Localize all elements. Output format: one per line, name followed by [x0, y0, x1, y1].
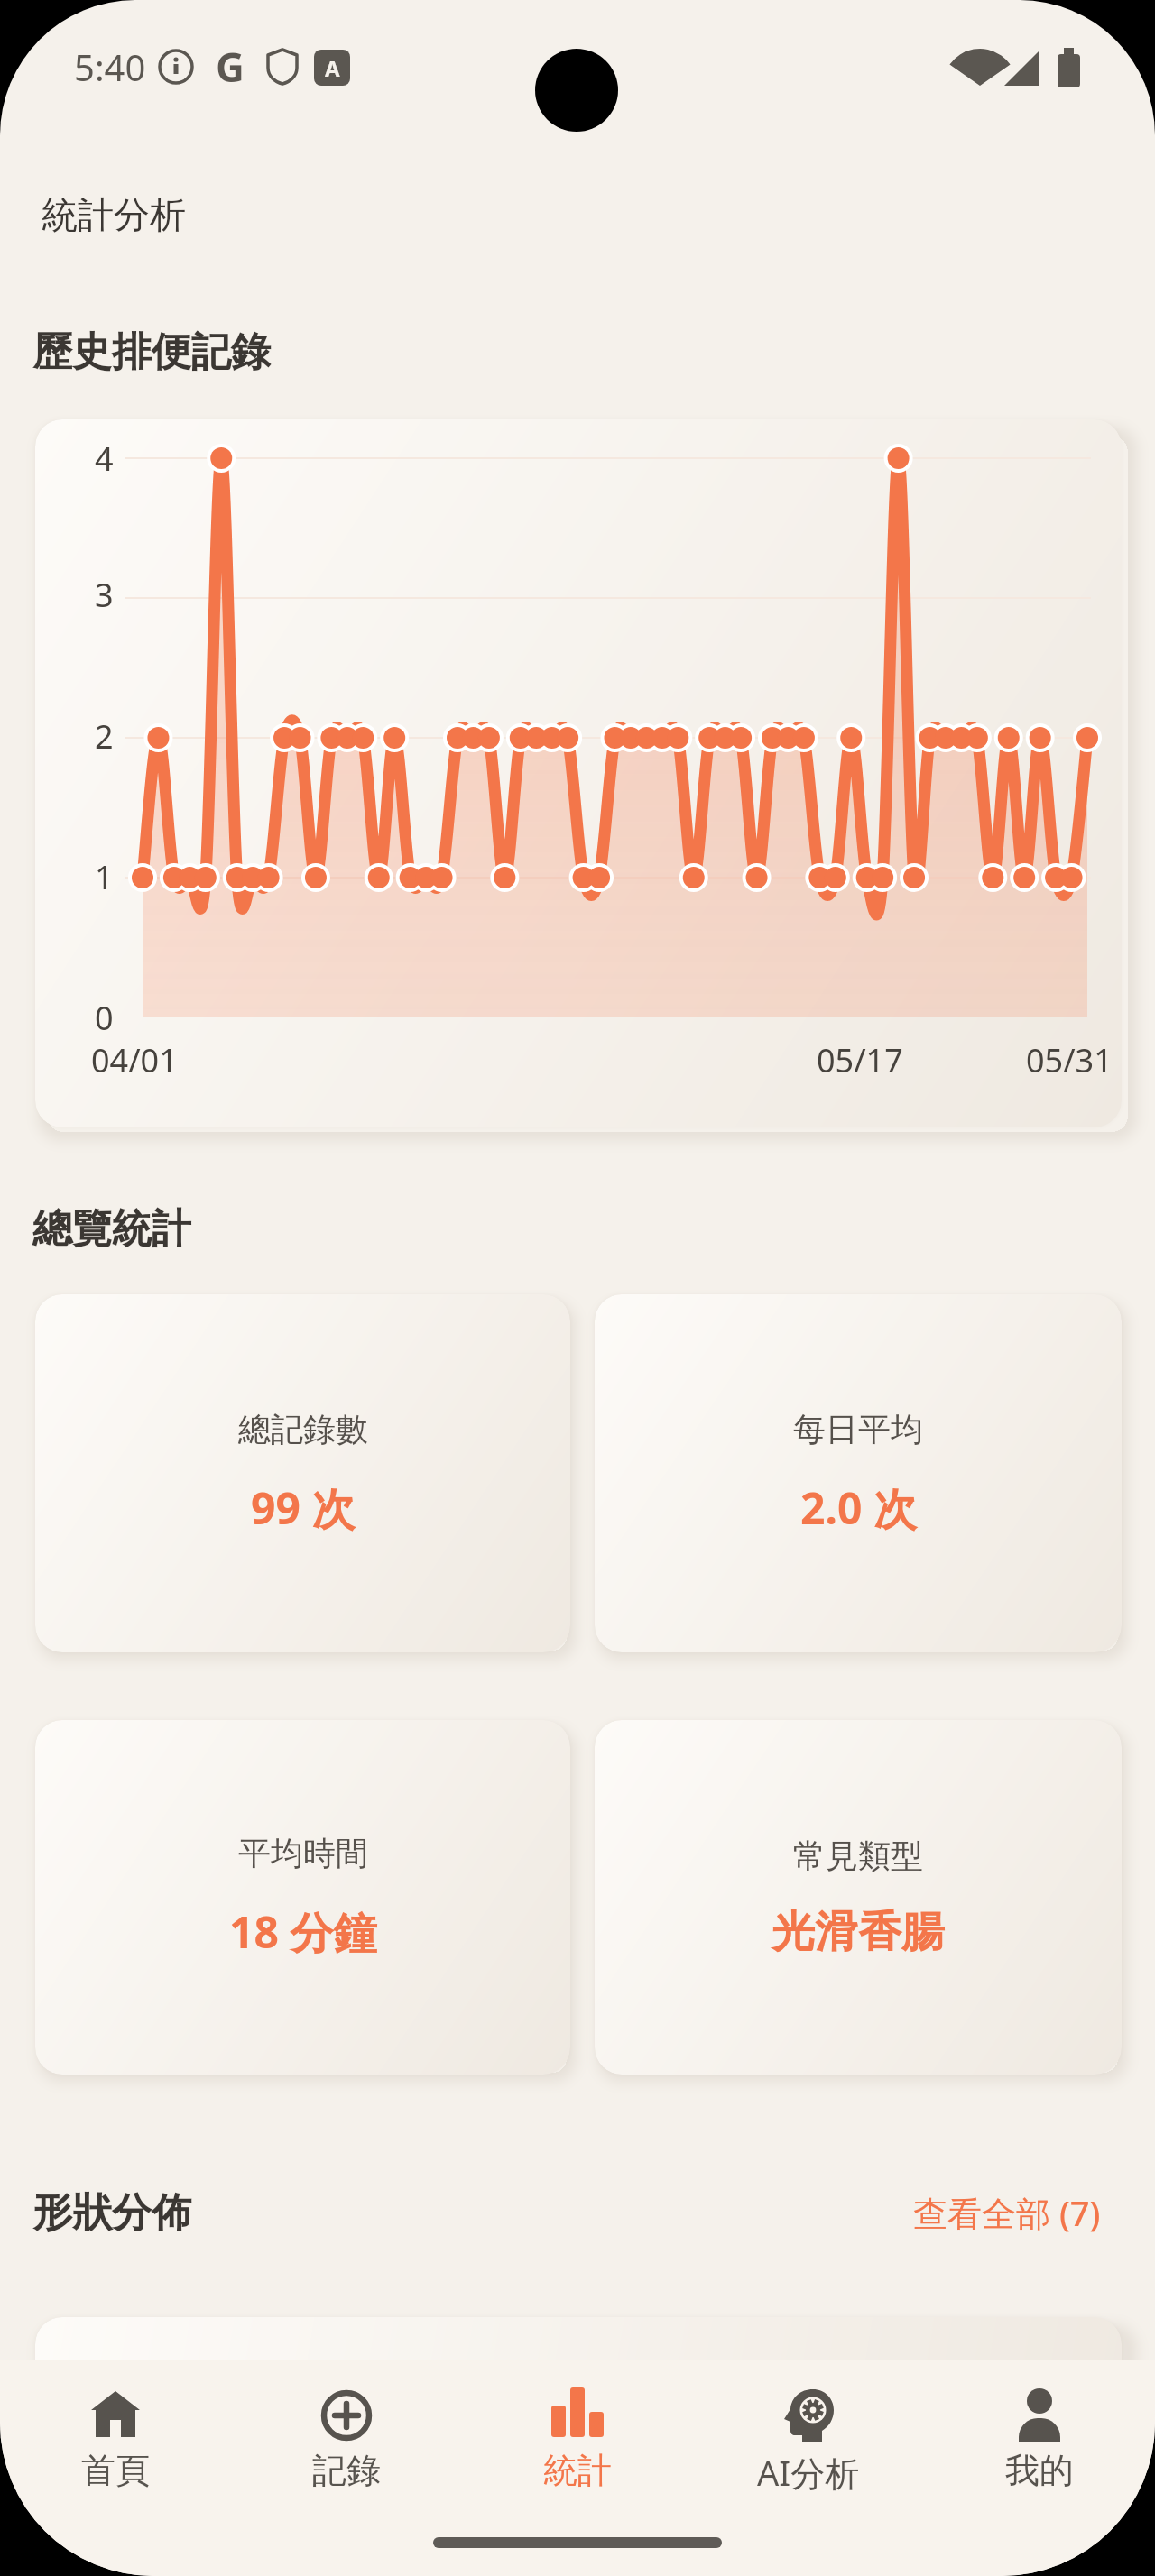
- button[interactable]: 常見類型: [595, 1720, 1122, 2075]
- button[interactable]: 記錄: [231, 2360, 462, 2513]
- staticText: 3: [95, 573, 114, 617]
- staticText: 0: [95, 996, 114, 1040]
- staticText: 平均時間: [238, 1833, 368, 1873]
- button[interactable]: 首頁: [0, 2360, 231, 2513]
- button[interactable]: 每日平均: [595, 1294, 1122, 1652]
- staticText: 統計分析: [42, 192, 186, 237]
- button[interactable]: 查看全部 (7): [830, 2176, 1101, 2249]
- staticText: 04/01: [91, 1038, 178, 1082]
- staticText: 統計: [543, 2449, 612, 2492]
- button[interactable]: 平均時間: [35, 1720, 570, 2075]
- staticText: 形狀分佈: [32, 2188, 191, 2238]
- button[interactable]: 總記錄數: [35, 1294, 570, 1652]
- button[interactable]: 4: [35, 419, 1122, 1127]
- staticText: 首頁: [81, 2449, 150, 2492]
- staticText: 05/31: [1026, 1038, 1113, 1082]
- staticText: 歷史排便記錄: [32, 327, 271, 377]
- staticText: 查看全部 (7): [913, 2189, 1101, 2236]
- staticText: 記錄: [312, 2449, 381, 2492]
- staticText: 總記錄數: [238, 1409, 368, 1449]
- staticText: 05/17: [817, 1038, 903, 1082]
- staticText: G: [216, 40, 245, 94]
- staticText: 每日平均: [793, 1409, 923, 1449]
- staticText: 我的: [1005, 2449, 1074, 2492]
- button[interactable]: 我的: [924, 2360, 1155, 2513]
- staticText: 2: [95, 714, 114, 759]
- staticText: 常見類型: [793, 1835, 923, 1876]
- button[interactable]: AI分析: [693, 2360, 924, 2513]
- staticText: AI分析: [757, 2449, 860, 2496]
- staticText: 99 次: [251, 1478, 356, 1538]
- staticText: 4: [95, 437, 114, 481]
- staticText: 5:40: [74, 42, 146, 91]
- staticText: 1: [95, 855, 114, 899]
- staticText: 18 分鐘: [229, 1902, 377, 1962]
- staticText: 總覽統計: [32, 1204, 191, 1254]
- staticText: 光滑香腸: [772, 1905, 945, 1959]
- staticText: 2.0 次: [800, 1478, 917, 1538]
- staticText: A: [325, 53, 340, 83]
- button[interactable]: 統計: [462, 2360, 693, 2513]
